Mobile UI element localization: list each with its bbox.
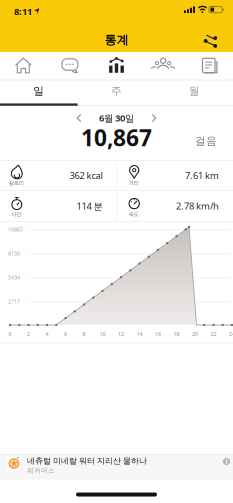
staticText: 주	[111, 84, 122, 97]
staticText: 거리	[129, 180, 139, 186]
staticText: 10867	[8, 226, 23, 233]
staticText: 0	[8, 330, 11, 338]
staticText: 8:11	[14, 5, 32, 18]
staticText: 통계	[104, 33, 128, 47]
staticText: 18	[173, 330, 179, 338]
staticText: 24	[229, 330, 233, 338]
staticText: 7.61 km	[185, 169, 219, 182]
staticText: 걸음	[195, 134, 217, 147]
staticText: 8	[82, 330, 85, 338]
staticText: 114 분	[76, 200, 102, 212]
staticText: 12	[118, 330, 124, 338]
staticText: 시간	[11, 211, 21, 218]
staticText: 네츄럴 미네랄 워터 지리산 물하나	[27, 456, 147, 466]
staticText: 362 kcal	[69, 169, 102, 182]
staticText: 14	[136, 330, 142, 338]
button[interactable]: 월	[155, 79, 233, 103]
button[interactable]: Chat	[47, 52, 93, 80]
staticText: 8150	[8, 250, 20, 257]
staticText: 일	[33, 84, 44, 97]
button[interactable]: 네츄럴 미네랄 워터 지리산 물하나	[0, 454, 233, 479]
button[interactable]: Statistics	[93, 52, 139, 80]
staticText: 2	[27, 330, 30, 338]
button[interactable]: Previous day	[72, 111, 85, 125]
staticText: 월	[189, 84, 200, 97]
staticText: 4	[45, 330, 48, 338]
staticText: 20	[192, 330, 198, 338]
button[interactable]: 일	[0, 79, 78, 103]
staticText: 6	[64, 330, 67, 338]
button[interactable]: Next day	[147, 111, 160, 125]
staticText: 속도	[129, 211, 139, 218]
staticText: 5434	[8, 274, 20, 281]
staticText: 16	[155, 330, 161, 338]
staticText: 2717	[8, 298, 20, 305]
button[interactable]: Share	[196, 28, 224, 52]
button[interactable]: Challenge	[140, 52, 186, 80]
staticText: 10,867	[81, 122, 152, 152]
staticText: i	[225, 457, 227, 466]
staticText: 6월 30일	[99, 112, 134, 124]
staticText: 10	[99, 330, 105, 338]
staticText: 22	[210, 330, 216, 338]
staticText: 칼로리	[9, 180, 24, 186]
staticText: 워커머스	[27, 466, 55, 475]
button[interactable]: 주	[78, 79, 155, 103]
staticText: 2.78 km/h	[176, 200, 219, 212]
button[interactable]: Ad info	[221, 456, 231, 466]
button[interactable]: News	[187, 52, 233, 80]
button[interactable]: Home	[0, 52, 46, 80]
